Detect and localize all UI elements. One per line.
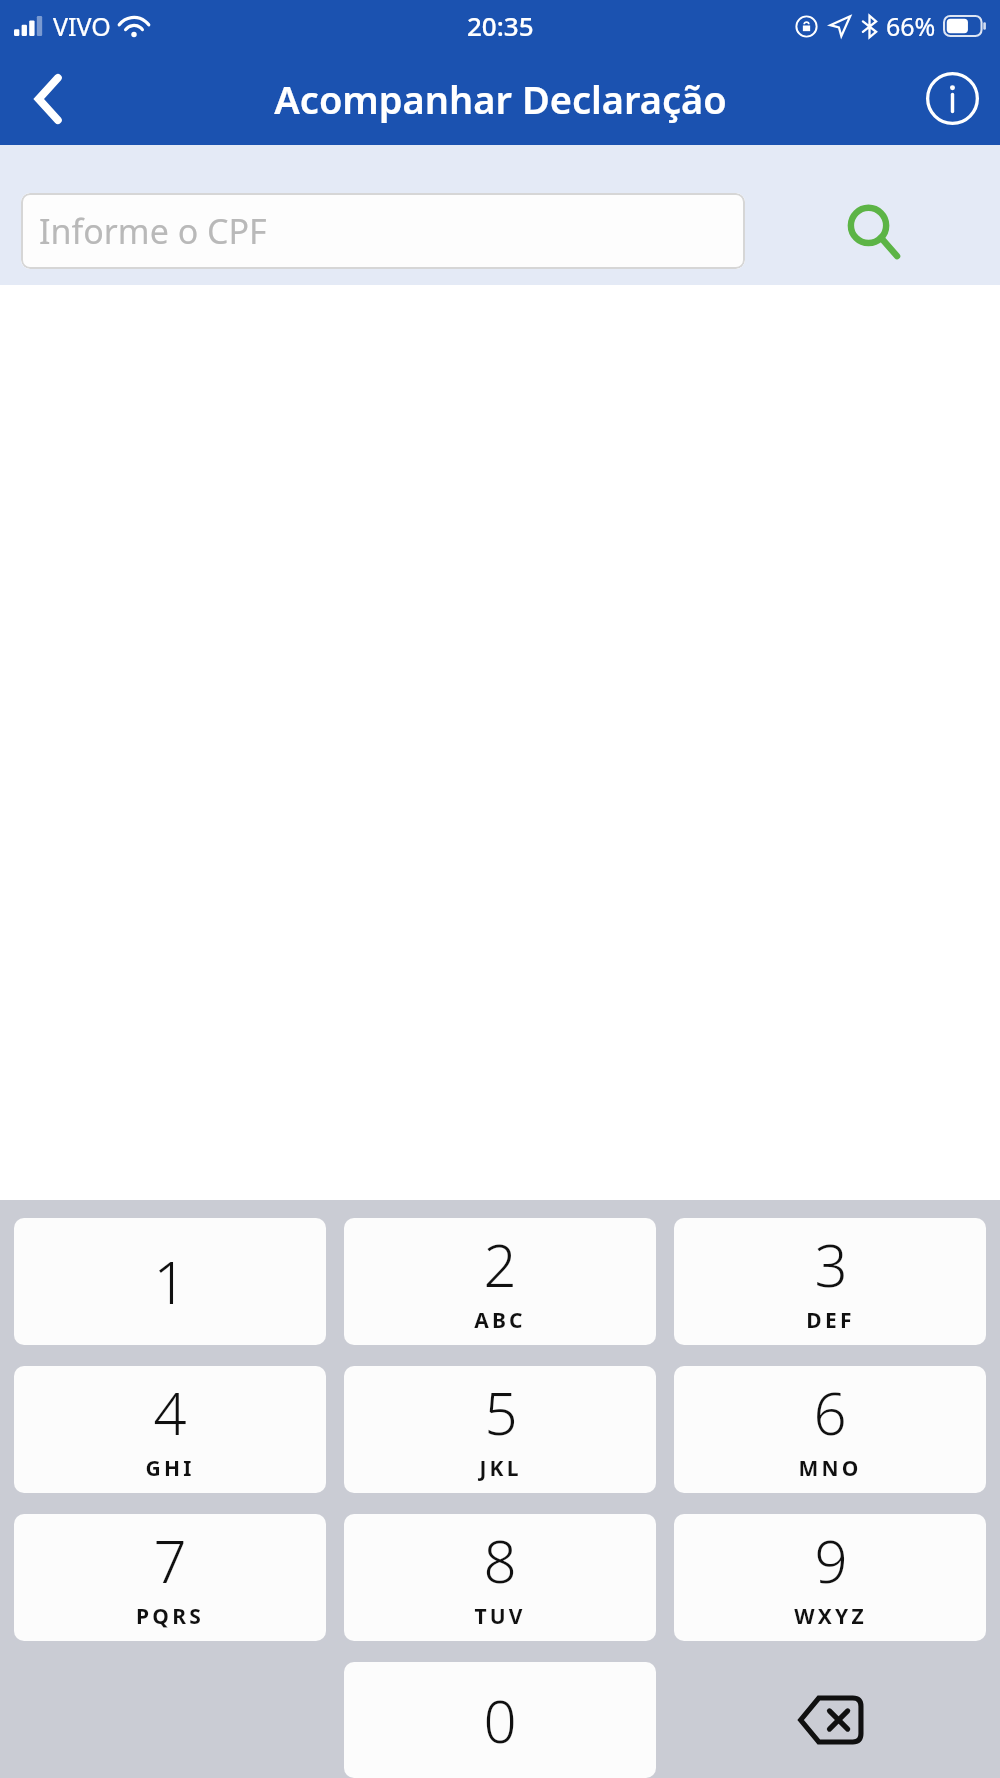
button[interactable]: 4	[14, 1366, 326, 1493]
button[interactable]: 9	[674, 1514, 986, 1641]
button[interactable]: 6	[674, 1366, 986, 1493]
staticText: 20:35	[467, 8, 534, 43]
staticText: GHI	[145, 1454, 195, 1483]
staticText: ABC	[474, 1306, 526, 1335]
staticText: 7	[153, 1521, 187, 1600]
button[interactable]: 7	[14, 1514, 326, 1641]
staticText: 9	[814, 1521, 848, 1600]
button[interactable]: 8	[344, 1514, 656, 1641]
staticText: 0	[483, 1681, 517, 1760]
staticText: WXYZ	[794, 1602, 867, 1631]
staticText: MNO	[798, 1454, 862, 1483]
button[interactable]: Pesquisar	[745, 193, 1000, 269]
staticText: PQRS	[136, 1602, 204, 1631]
staticText: JKL	[479, 1454, 522, 1483]
button[interactable]: Informe o CPF	[21, 193, 745, 269]
staticText: 3	[814, 1225, 848, 1304]
button[interactable]: 0	[344, 1662, 656, 1778]
button[interactable]: Voltar	[0, 52, 96, 145]
button[interactable]: 3	[674, 1218, 986, 1345]
staticText: 66%	[886, 9, 936, 43]
staticText: 6	[813, 1373, 847, 1452]
staticText: 8	[483, 1521, 517, 1600]
staticText: Informe o CPF	[39, 208, 267, 254]
staticText: 5	[484, 1373, 518, 1452]
button[interactable]: 1	[14, 1218, 326, 1345]
button[interactable]: 2	[344, 1218, 656, 1345]
staticText: TUV	[474, 1602, 526, 1631]
staticText: VIVO	[53, 9, 111, 43]
staticText: Acompanhar Declaração	[274, 73, 727, 125]
button[interactable]: 5	[344, 1366, 656, 1493]
staticText: 4	[153, 1373, 187, 1452]
staticText: DEF	[806, 1306, 855, 1335]
staticText: 1	[153, 1242, 187, 1321]
staticText: 2	[483, 1225, 517, 1304]
button[interactable]: Informações	[904, 52, 1000, 145]
button[interactable]: Apagar	[674, 1662, 986, 1778]
